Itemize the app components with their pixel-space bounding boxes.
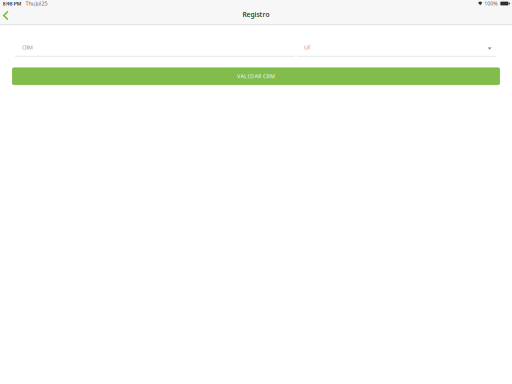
staticText: CRM [22, 44, 33, 51]
staticText: VALIDAR CRM [237, 73, 275, 80]
staticText: 8:48 PM [2, 0, 21, 7]
button[interactable]: CRM [15, 31, 295, 57]
button[interactable]: UF [297, 31, 496, 57]
button[interactable]: VALIDAR CRM [12, 68, 499, 85]
button[interactable]: Back [0, 7, 11, 24]
staticText: UF [304, 44, 311, 51]
staticText: Thu Jul 25 [25, 0, 47, 7]
staticText: Registro [242, 10, 269, 19]
staticText: 100% [484, 0, 497, 7]
